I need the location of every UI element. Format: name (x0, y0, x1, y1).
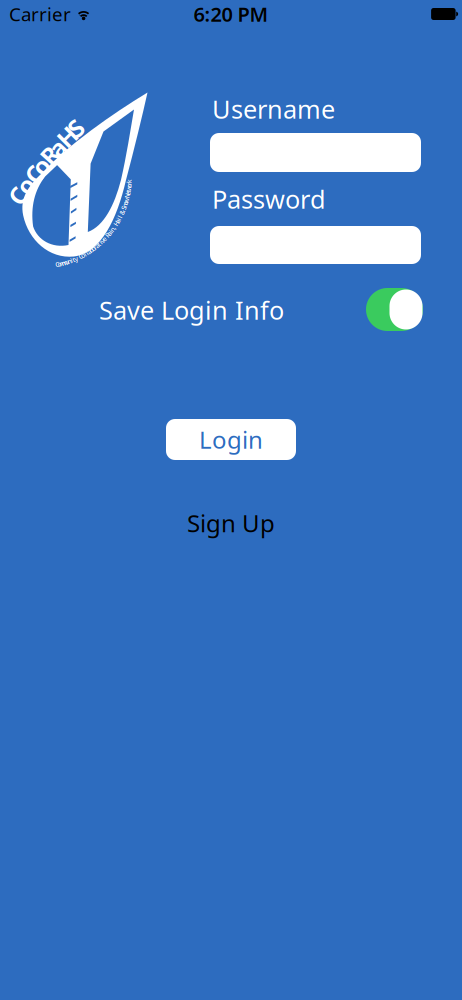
staticText: Carrier (9, 2, 71, 26)
staticText: t (127, 186, 130, 195)
staticText: n (110, 225, 114, 234)
staticText: e (102, 234, 106, 243)
button[interactable]: Login (166, 419, 296, 460)
staticText (120, 210, 122, 219)
staticText: n (123, 201, 127, 210)
staticText: H (114, 219, 119, 228)
staticText: m (59, 259, 65, 268)
staticText: o (58, 259, 62, 268)
staticText: i (110, 227, 112, 236)
staticText (122, 205, 124, 214)
staticText: l (119, 212, 121, 221)
staticText: r (94, 243, 97, 252)
staticText (105, 233, 107, 241)
staticText: a (50, 132, 64, 164)
staticText: t (72, 255, 75, 264)
staticText: a (116, 217, 120, 225)
staticText: o (81, 251, 85, 260)
staticText: o (123, 198, 127, 207)
staticText: Password (212, 182, 326, 216)
staticText: Sign Up (187, 507, 275, 539)
staticText: i (100, 238, 102, 247)
staticText: H (58, 121, 76, 153)
staticText: l (84, 250, 86, 258)
staticText: 6:20 PM (193, 1, 268, 27)
staticText: R (106, 231, 110, 240)
staticText: N (125, 191, 130, 200)
staticText: i (71, 256, 73, 265)
staticText: C (10, 180, 25, 212)
staticText: & (119, 208, 124, 217)
staticText: a (95, 241, 99, 250)
staticText: Username (212, 92, 335, 126)
staticText: w (126, 184, 131, 193)
staticText: k (127, 177, 131, 185)
staticText: m (62, 258, 68, 267)
staticText: u (65, 257, 69, 266)
staticText: n (67, 257, 71, 266)
staticText: Save Login Info (99, 293, 284, 327)
staticText (77, 253, 79, 262)
staticText: e (126, 189, 130, 198)
staticText: o (91, 244, 95, 253)
staticText: b (89, 246, 93, 254)
staticText: v (101, 236, 105, 245)
button[interactable]: Save Login Info (366, 288, 423, 331)
button[interactable]: Sign Up (171, 508, 291, 538)
staticText: y (74, 254, 78, 263)
staticText: S (122, 203, 126, 212)
staticText: Login (199, 424, 263, 455)
staticText: w (124, 196, 129, 205)
staticText: C (26, 159, 41, 191)
staticText: C (55, 260, 59, 269)
staticText: r (127, 179, 130, 188)
staticText: t (97, 239, 100, 248)
staticText: a (87, 247, 91, 256)
staticText: C (79, 252, 83, 261)
staticText: , (113, 223, 115, 232)
staticText (126, 194, 128, 203)
staticText: o (18, 170, 33, 201)
staticText: o (127, 182, 131, 190)
staticText (114, 221, 116, 230)
staticText: S (69, 112, 82, 144)
staticText: i (118, 214, 120, 223)
staticText: l (86, 248, 88, 257)
staticText: o (33, 150, 48, 182)
staticText: a (107, 229, 111, 238)
staticText: R (42, 139, 58, 171)
